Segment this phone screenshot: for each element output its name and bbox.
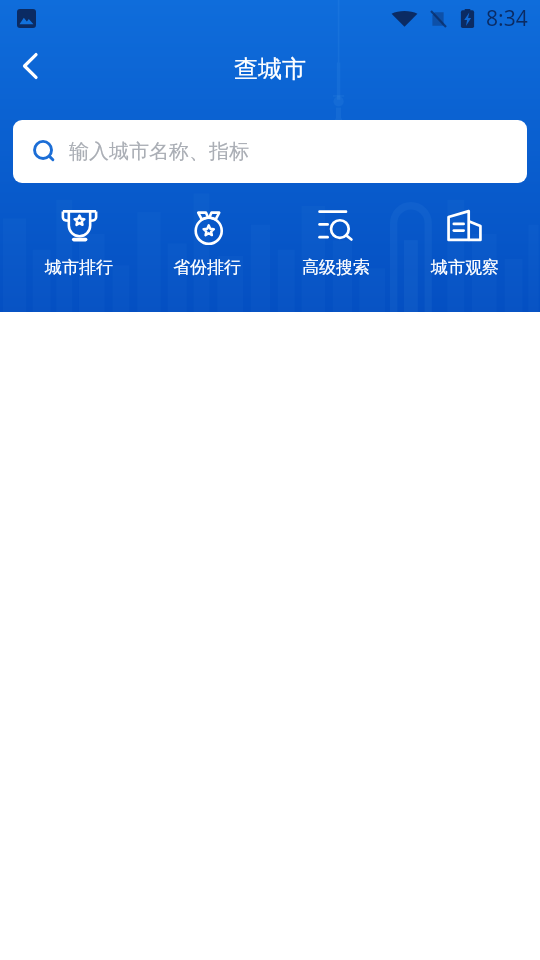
button[interactable]: Back	[0, 37, 62, 95]
staticText: 查城市	[234, 54, 306, 84]
staticText: 城市观察	[431, 257, 499, 278]
button[interactable]: 高级搜索	[271, 210, 400, 278]
staticText: 省份排行	[173, 257, 241, 278]
button[interactable]: 城市观察	[400, 210, 529, 278]
staticText: 8:34	[486, 4, 528, 33]
staticText: 城市排行	[45, 257, 113, 278]
staticText: 输入城市名称、指标	[69, 139, 249, 164]
button[interactable]: 输入城市名称、指标	[13, 120, 527, 183]
staticText: 高级搜索	[302, 257, 370, 278]
button[interactable]: 省份排行	[143, 210, 271, 278]
button[interactable]: 城市排行	[15, 210, 143, 278]
